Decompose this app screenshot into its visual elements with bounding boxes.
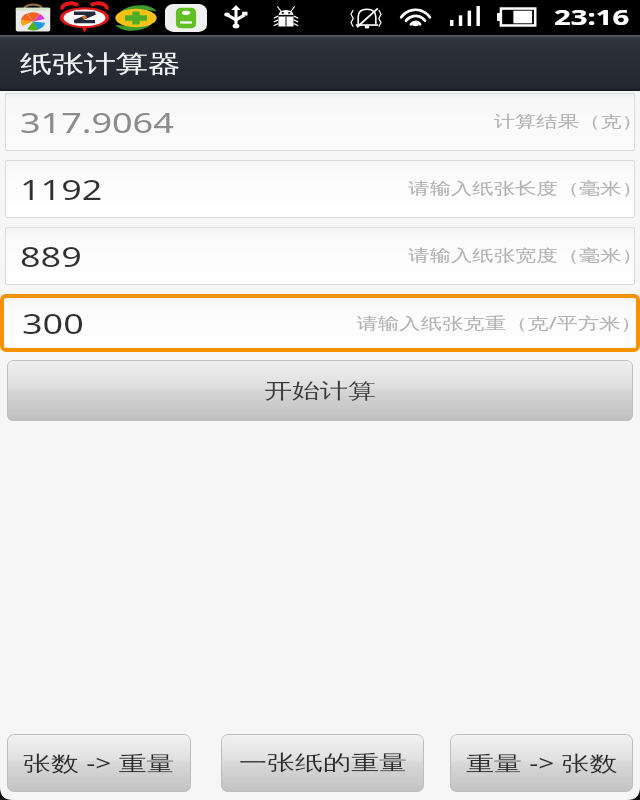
other: Silent mode, vibrate: [345, 7, 385, 29]
staticText: 开始计算: [264, 378, 376, 404]
other: USB connected: [222, 5, 250, 29]
staticText: 23:16: [554, 1, 630, 31]
other: Wi-Fi: [398, 6, 433, 27]
staticText: 一张纸的重量: [239, 750, 407, 776]
other: Signal strength: [450, 6, 483, 26]
staticText: 纸张计算器: [20, 49, 180, 79]
other: Alarm: [58, 3, 111, 33]
staticText: 1192: [20, 171, 103, 208]
staticText: 张数 -> 重量: [23, 749, 175, 778]
staticText: 300: [22, 305, 85, 342]
staticText: 请输入纸张长度（毫米）: [408, 179, 640, 199]
other: Battery app: [165, 4, 207, 32]
button[interactable]: 张数 -> 重量: [7, 734, 191, 792]
staticText: 请输入纸张宽度（毫米）: [408, 246, 640, 266]
other: USB debugging: [268, 6, 304, 28]
button[interactable]: 317.9064: [5, 93, 635, 151]
button[interactable]: 一张纸的重量: [221, 734, 424, 792]
button[interactable]: 重量 -> 张数: [450, 734, 633, 792]
button[interactable]: 开始计算: [7, 360, 633, 421]
staticText: 317.9064: [20, 104, 175, 141]
other: Market: [12, 4, 54, 33]
staticText: 889: [20, 238, 83, 275]
button[interactable]: 1192: [5, 160, 635, 218]
button[interactable]: 889: [5, 227, 635, 285]
staticText: 计算结果（克）: [494, 112, 640, 132]
other: Battery: [497, 8, 536, 26]
other: Security app: [113, 4, 159, 32]
staticText: 重量 -> 张数: [466, 749, 618, 778]
staticText: 请输入纸张克重（克/平方米）: [357, 312, 640, 334]
button[interactable]: 300: [0, 294, 640, 352]
